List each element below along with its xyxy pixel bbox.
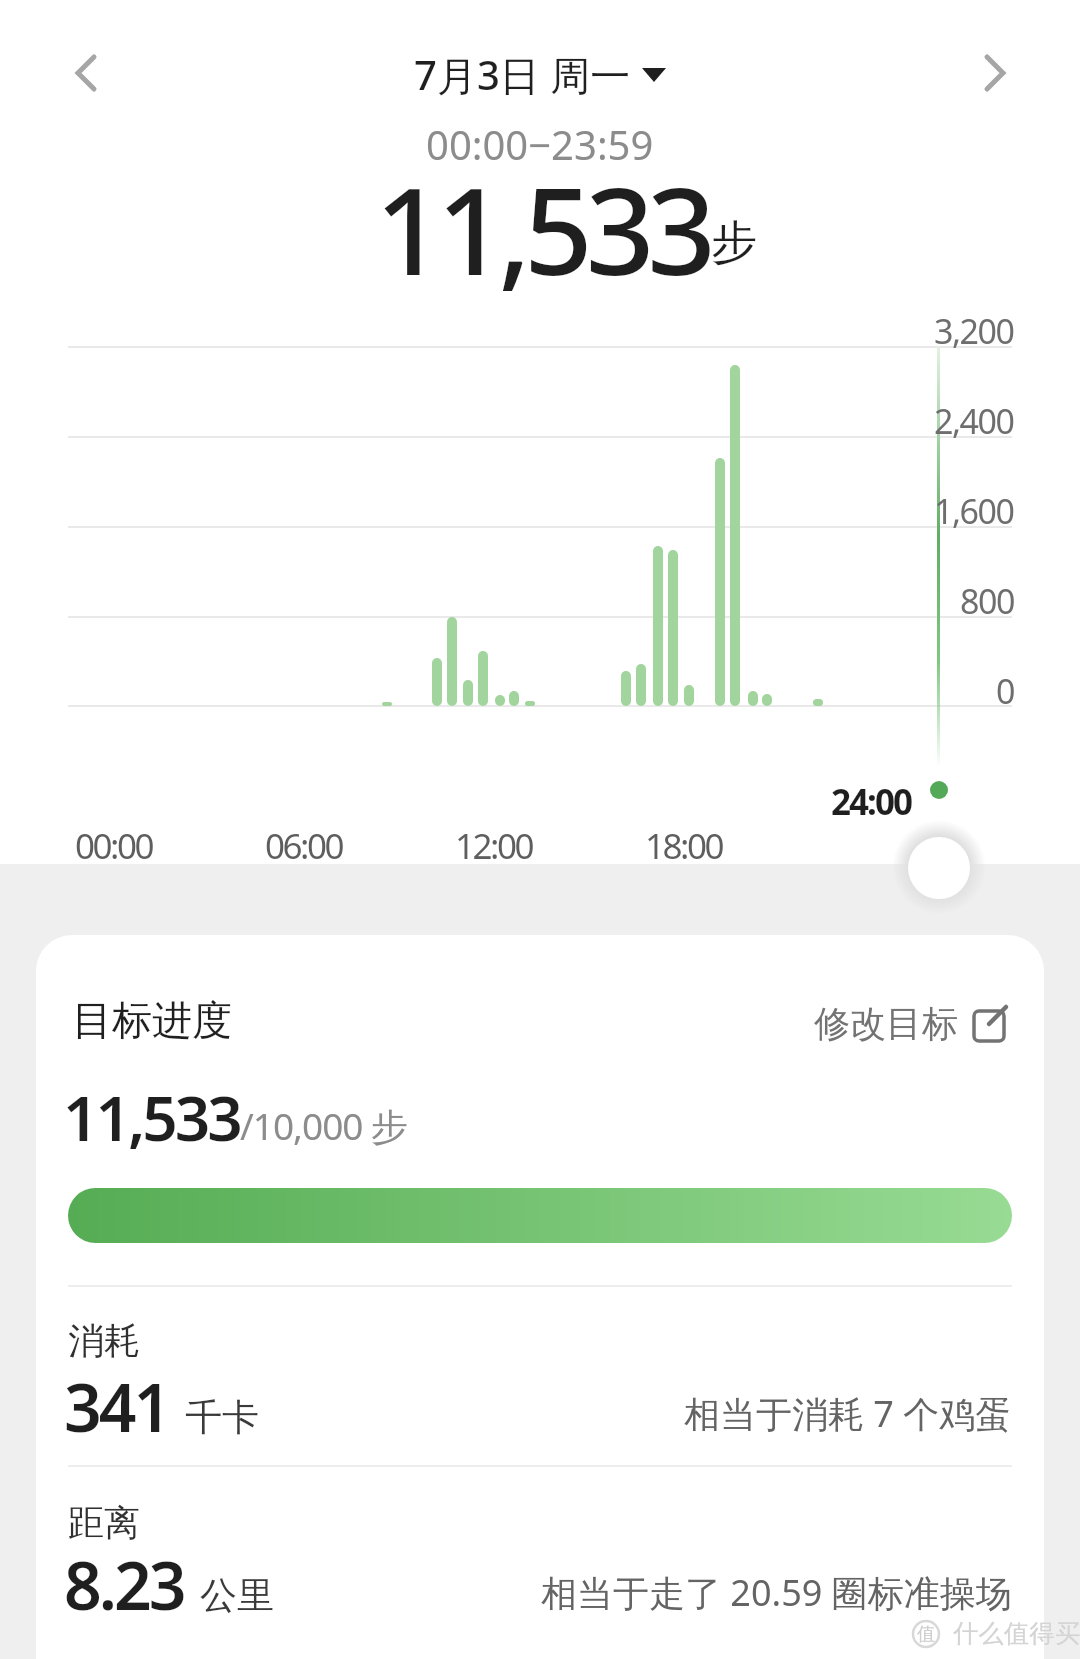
staticText: 距离 (68, 1500, 140, 1545)
button[interactable] (55, 48, 107, 100)
staticText: 消耗 (68, 1318, 140, 1363)
staticText: 什么值得买 (953, 1618, 1080, 1649)
staticText: 8.23 (64, 1539, 184, 1629)
staticText: 00:00−23:59 (426, 117, 654, 171)
staticText: 06:00 (265, 822, 342, 870)
staticText: 千卡 (185, 1394, 259, 1441)
staticText: 1,600 (934, 488, 1014, 534)
staticText: 公里 (200, 1572, 274, 1619)
button[interactable]: 7月3日 周一 (414, 47, 666, 102)
staticText: 341 (64, 1361, 169, 1451)
staticText: 相当于走了 20.59 圈标准操场 (541, 1568, 1012, 1617)
staticText: 800 (960, 578, 1014, 624)
staticText: 0 (996, 668, 1014, 714)
staticText: 00:00 (75, 822, 152, 870)
staticText: 11,533 (63, 1075, 240, 1159)
staticText: /10,000 步 (240, 1100, 408, 1151)
staticText: 3,200 (934, 308, 1014, 354)
staticText: 步 (711, 214, 757, 272)
staticText: 修改目标 (814, 1001, 958, 1046)
button[interactable] (908, 837, 970, 899)
staticText: 11,533 (375, 147, 709, 310)
staticText: 12:00 (455, 822, 532, 870)
staticText: 24:00 (831, 778, 911, 826)
staticText: 7月3日 周一 (414, 47, 631, 102)
button[interactable] (974, 48, 1026, 100)
button[interactable]: 修改目标 (814, 1001, 1010, 1046)
staticText: 值 (917, 1623, 935, 1646)
staticText: 2,400 (934, 398, 1014, 444)
staticText: 18:00 (645, 822, 722, 870)
staticText: 目标进度 (72, 995, 232, 1045)
staticText: 相当于消耗 7 个鸡蛋 (684, 1389, 1012, 1438)
